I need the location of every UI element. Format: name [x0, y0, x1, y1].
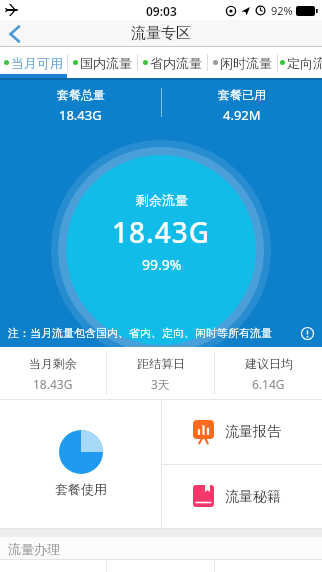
- staticText: 18.43G: [59, 106, 102, 124]
- staticText: 流量报告: [225, 423, 281, 441]
- staticText: 99.9%: [142, 255, 182, 274]
- staticText: 距结算日: [137, 356, 185, 371]
- button[interactable]: 套餐已用: [161, 87, 322, 124]
- staticText: 流量专区: [131, 24, 191, 43]
- staticText: 建议日均: [245, 356, 293, 371]
- button[interactable]: [0, 20, 30, 47]
- staticText: 当月剩余: [29, 356, 77, 371]
- button[interactable]: 建议日均: [215, 347, 322, 400]
- staticText: 剩余流量: [136, 192, 188, 208]
- staticText: 3天: [151, 376, 170, 392]
- staticText: 套餐已用: [218, 87, 266, 102]
- button[interactable]: 套餐总量: [0, 87, 161, 124]
- button[interactable]: 省内流量: [138, 47, 207, 78]
- staticText: 注：当月流量包含国内、省内、定向、闲时等所有流量: [8, 326, 272, 340]
- staticText: 4.92M: [223, 106, 261, 124]
- staticText: 省内流量: [150, 55, 202, 71]
- staticText: 92%: [271, 3, 293, 18]
- staticText: 流量秘籍: [225, 488, 281, 506]
- button[interactable]: 定向流量: [278, 47, 322, 78]
- button[interactable]: 套餐使用: [0, 400, 161, 529]
- staticText: 6.14G: [252, 376, 285, 392]
- staticText: 闲时流量: [220, 55, 272, 71]
- button[interactable]: 流量报告: [162, 400, 322, 464]
- staticText: 套餐总量: [57, 87, 105, 102]
- button[interactable]: 流量秘籍: [162, 465, 322, 528]
- staticText: 套餐使用: [55, 481, 107, 497]
- staticText: 流量办理: [8, 541, 60, 557]
- staticText: 18.43G: [112, 213, 211, 251]
- button[interactable]: [301, 327, 314, 340]
- staticText: 18.43G: [33, 376, 73, 392]
- staticText: 当月可用: [11, 55, 63, 71]
- button[interactable]: 当月可用: [0, 47, 67, 78]
- button[interactable]: 国内流量: [68, 47, 137, 78]
- staticText: 国内流量: [80, 55, 132, 71]
- staticText: 定向流量: [287, 55, 322, 71]
- button[interactable]: 距结算日: [107, 347, 214, 400]
- button[interactable]: 闲时流量: [208, 47, 277, 78]
- button[interactable]: 当月剩余: [0, 347, 106, 400]
- staticText: 09:03: [146, 3, 177, 19]
